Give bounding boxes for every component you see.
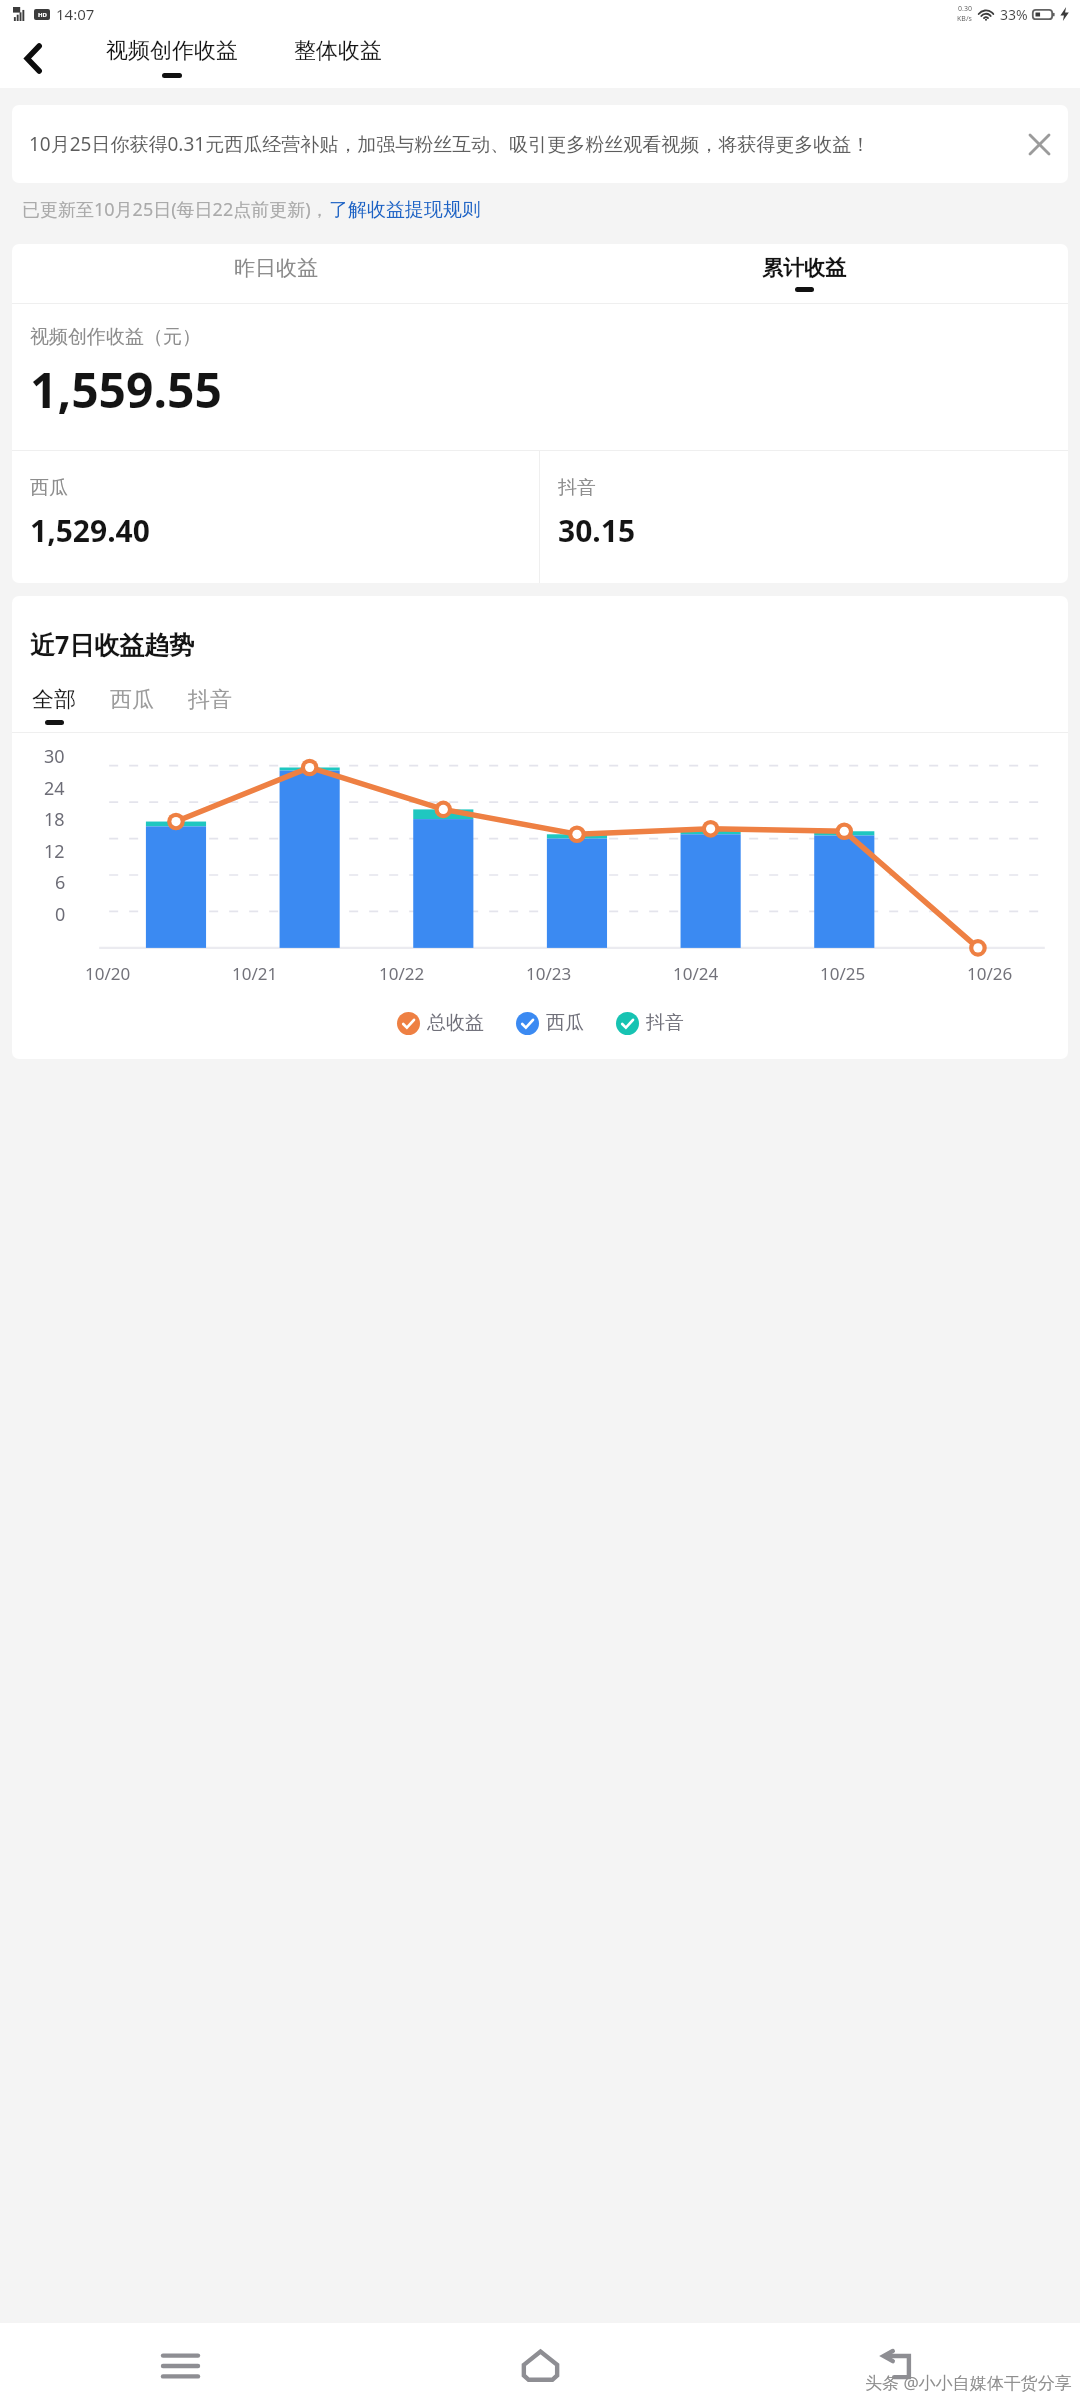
staticText: 18 [44,807,65,832]
button[interactable]: Home [360,2323,720,2408]
button[interactable]: 总收益 [395,1007,486,1039]
staticText: 近7日收益趋势 [30,627,195,661]
button[interactable]: 西瓜 [514,1007,586,1039]
button[interactable]: 10月25日你获得0.31元西瓜经营补贴，加强与粉丝互动、吸引更多粉丝观看视频，… [12,105,1068,183]
staticText: 抖音 [558,476,596,500]
staticText: HD [38,11,47,19]
staticText: 10/21 [232,962,278,985]
staticText: 6 [55,870,66,895]
staticText: 10/22 [379,962,425,985]
staticText: KB/s [957,14,972,24]
staticText: 24 [44,776,65,801]
staticText: 头条 @小小自媒体干货分享 [865,2371,1072,2394]
button[interactable]: 昨日收益 [12,244,540,303]
staticText: 总收益 [427,1011,484,1035]
staticText: 30 [44,744,65,769]
button[interactable]: 抖音 [614,1007,686,1039]
button[interactable]: Back [720,2323,1080,2408]
staticText: 整体收益 [294,37,382,65]
staticText: 西瓜 [30,476,68,500]
staticText: 西瓜 [546,1011,584,1035]
staticText: 0 [55,902,66,927]
staticText: 抖音 [646,1011,684,1035]
staticText: 10/25 [820,962,866,985]
staticText: 全部 [32,686,76,714]
button[interactable]: 累计收益 [540,244,1068,303]
staticText: 10/20 [85,962,131,985]
staticText: 14:07 [56,4,95,24]
button[interactable]: Recents [0,2323,360,2408]
staticText: 1,559.55 [30,357,222,422]
button[interactable]: Back [8,33,58,83]
staticText: 西瓜 [110,686,154,714]
staticText: 33% [1000,5,1028,24]
button[interactable]: 西瓜 [108,686,156,725]
button[interactable]: 全部 [30,686,78,725]
staticText: 10/24 [673,962,719,985]
staticText: 视频创作收益（元） [30,325,201,349]
button[interactable]: 西瓜 [12,451,539,583]
staticText: 0.30 [958,4,972,14]
button[interactable]: 整体收益 [288,34,388,81]
staticText: 抖音 [188,686,232,714]
button[interactable]: 抖音 [186,686,234,725]
staticText: 10/26 [967,962,1013,985]
button[interactable]: Close [1016,121,1062,167]
button[interactable]: 抖音 [540,451,1068,583]
staticText: 昨日收益 [234,255,318,281]
staticText: 10/23 [526,962,572,985]
button[interactable]: 了解收益提现规则 [329,198,481,222]
staticText: 10月25日你获得0.31元西瓜经营补贴，加强与粉丝互动、吸引更多粉丝观看视频，… [29,131,1016,157]
staticText: 30.15 [558,510,636,551]
staticText: 12 [44,839,65,864]
staticText: 视频创作收益 [106,37,238,65]
staticText: 已更新至10月25日(每日22点前更新)， [22,197,329,222]
staticText: 1,529.40 [30,510,150,551]
button[interactable]: 视频创作收益 [100,34,244,81]
staticText: 累计收益 [762,255,846,281]
staticText: 了解收益提现规则 [329,198,481,222]
